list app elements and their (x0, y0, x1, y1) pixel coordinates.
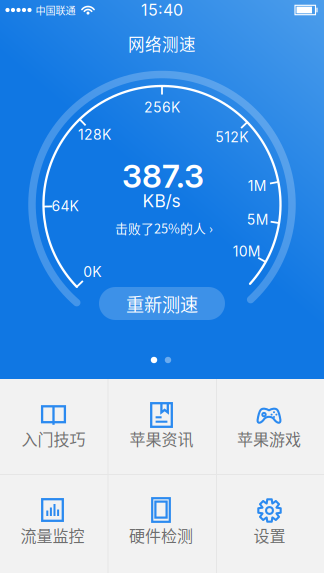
staticText: 0K (83, 263, 101, 280)
staticText: 10M (233, 243, 261, 260)
staticText: 387.3 (122, 157, 204, 195)
staticText: 击败了25%的人 › (115, 219, 213, 237)
staticText: 网络测速 (128, 31, 196, 55)
staticText: 5M (247, 211, 269, 228)
staticText: 15:40 (141, 0, 183, 20)
staticText: KB/s (142, 190, 180, 211)
button[interactable]: 重新测速 (99, 287, 225, 320)
staticText: 设置 (253, 523, 285, 547)
staticText: 中国联通 (35, 3, 75, 17)
staticText: 128K (78, 126, 111, 143)
staticText: 苹果资讯 (129, 427, 193, 450)
staticText: 入门技巧 (21, 427, 85, 450)
staticText: 256K (144, 99, 180, 116)
staticText: 硬件检测 (129, 523, 193, 547)
button[interactable]: 击败了25%的人 › (115, 219, 213, 237)
staticText: 流量监控 (20, 523, 84, 547)
staticText: 1M (248, 177, 267, 194)
staticText: 512K (215, 129, 248, 145)
staticText: 64K (51, 198, 78, 215)
staticText: 重新测速 (126, 290, 198, 317)
staticText: 苹果游戏 (237, 427, 301, 450)
